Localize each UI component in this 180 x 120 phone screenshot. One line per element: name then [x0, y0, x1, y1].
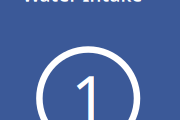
staticText: 1 — [71, 55, 108, 120]
staticText: Water Intake — [22, 0, 142, 7]
button[interactable]: Add a glass — [36, 46, 140, 120]
